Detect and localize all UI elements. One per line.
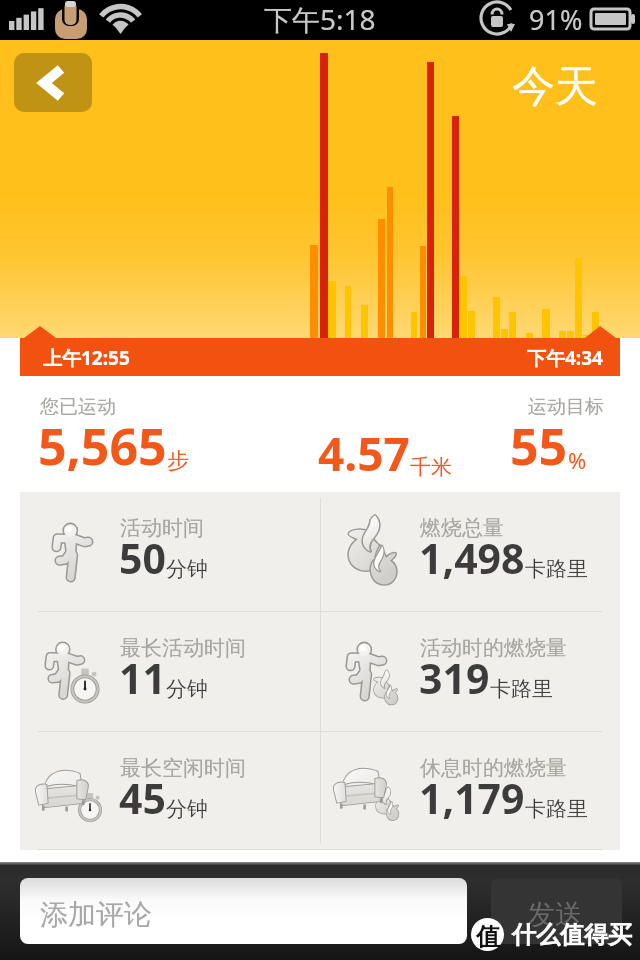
- staticText: 值: [476, 922, 500, 952]
- staticText: 1,498: [419, 530, 525, 586]
- staticText: 下午5:18: [264, 0, 376, 38]
- button[interactable]: 燃烧总量: [320, 492, 620, 611]
- staticText: 运动目标: [528, 395, 604, 419]
- staticText: 什么值得买: [512, 920, 632, 950]
- staticText: 步: [167, 447, 189, 475]
- button[interactable]: 休息时的燃烧量: [320, 732, 620, 850]
- button[interactable]: 活动时间: [20, 492, 320, 611]
- staticText: 5,565: [38, 412, 167, 480]
- staticText: 卡路里: [525, 796, 588, 822]
- staticText: %: [568, 445, 587, 475]
- staticText: 发送: [527, 897, 583, 932]
- staticText: 91%: [529, 1, 583, 38]
- staticText: 上午12:55: [43, 345, 130, 371]
- staticText: 今天: [512, 60, 598, 114]
- button[interactable]: 最长活动时间: [20, 612, 320, 731]
- staticText: 下午4:34: [527, 345, 603, 371]
- staticText: 卡路里: [490, 676, 553, 702]
- button[interactable]: 发送: [491, 878, 622, 944]
- staticText: 燃烧总量: [420, 515, 504, 541]
- staticText: 319: [419, 650, 490, 706]
- staticText: 最长活动时间: [120, 635, 246, 661]
- staticText: 最长空闲时间: [120, 755, 246, 781]
- staticText: 11: [119, 650, 166, 706]
- staticText: 您已运动: [40, 395, 116, 419]
- staticText: 千米: [410, 454, 452, 480]
- staticText: 4.57: [318, 422, 410, 485]
- staticText: 分钟: [166, 556, 208, 582]
- staticText: 50: [119, 530, 166, 586]
- staticText: 活动时间: [120, 515, 204, 541]
- staticText: 1,179: [419, 770, 525, 826]
- staticText: 分钟: [166, 676, 208, 702]
- button[interactable]: 最长空闲时间: [20, 732, 320, 850]
- staticText: 活动时的燃烧量: [420, 635, 567, 661]
- button[interactable]: 活动时的燃烧量: [320, 612, 620, 731]
- staticText: 分钟: [166, 796, 208, 822]
- button[interactable]: Back: [14, 53, 92, 112]
- staticText: 55: [510, 412, 568, 480]
- staticText: 添加评论: [40, 897, 152, 932]
- staticText: 45: [119, 770, 166, 826]
- button[interactable]: 添加评论: [20, 878, 467, 944]
- staticText: 卡路里: [525, 556, 588, 582]
- staticText: 休息时的燃烧量: [420, 755, 567, 781]
